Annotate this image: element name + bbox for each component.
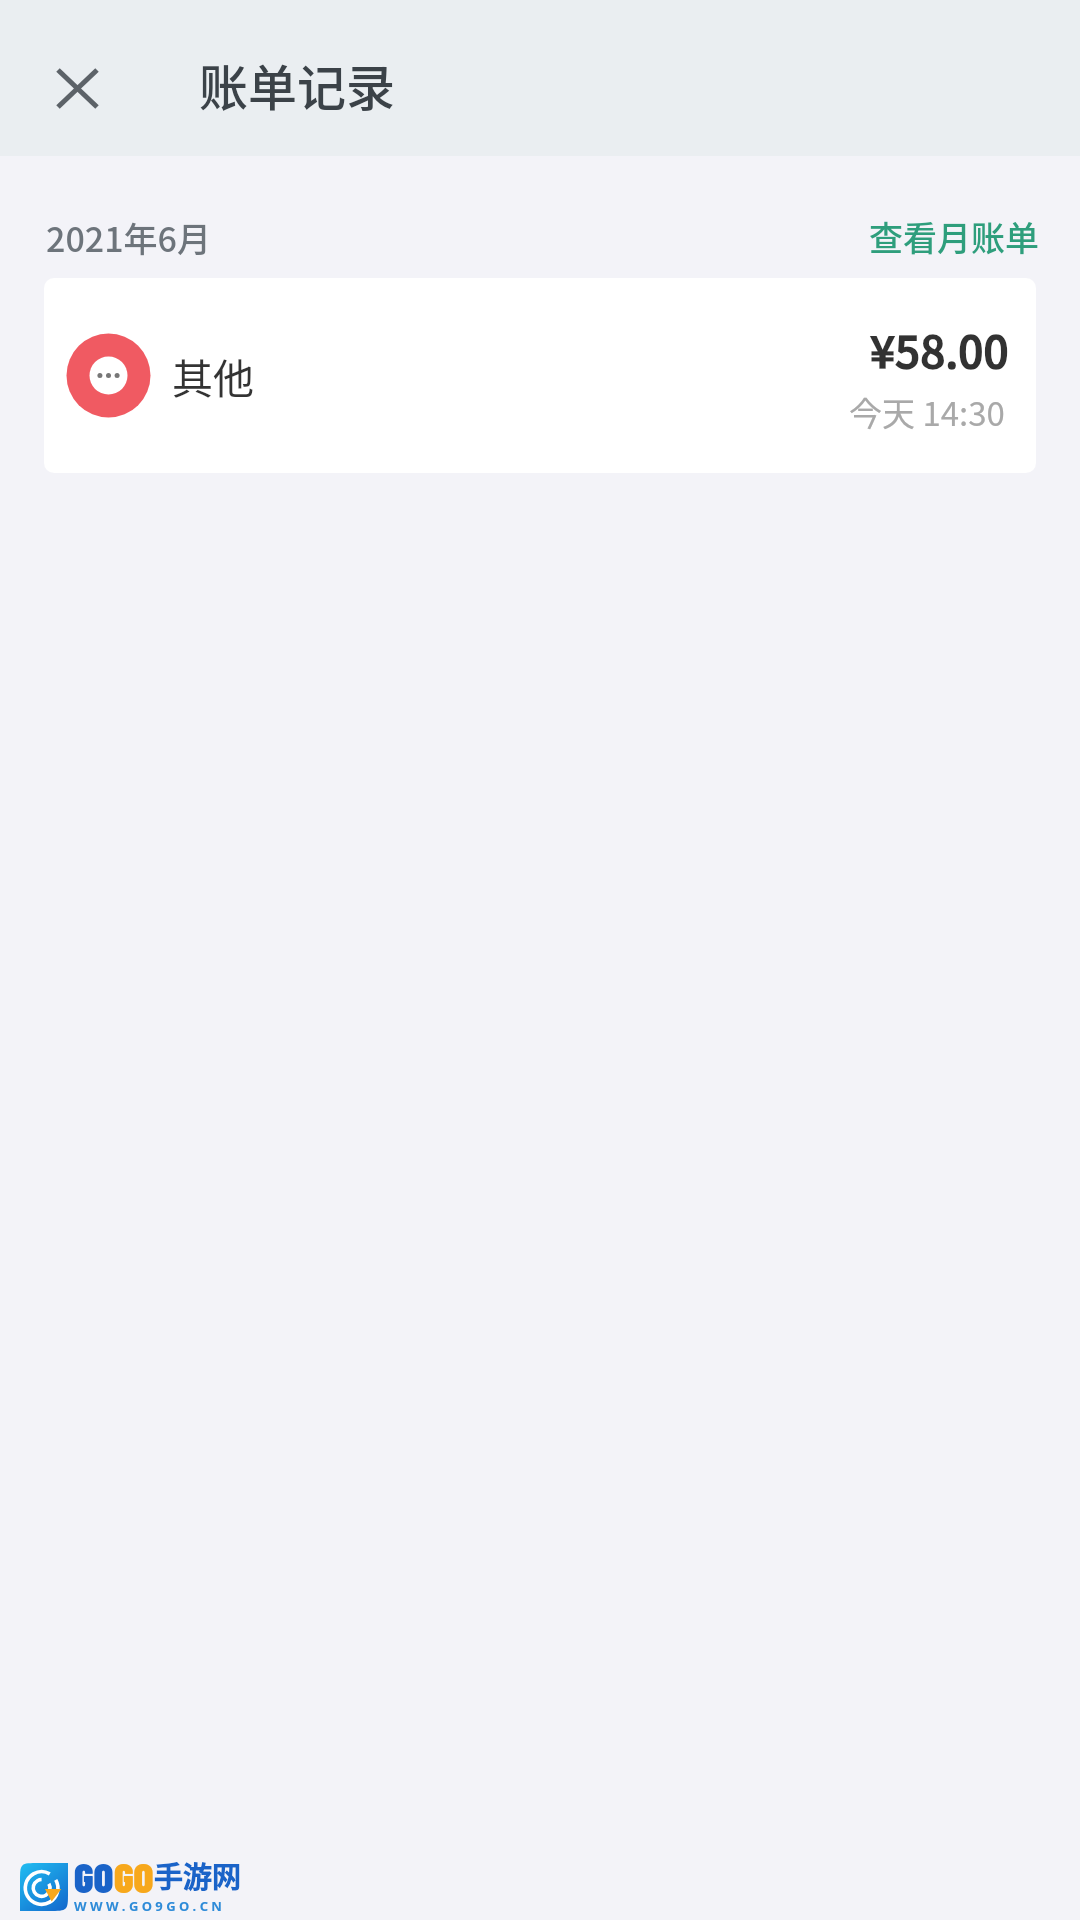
staticText: GO <box>74 1852 114 1901</box>
staticText: GO <box>114 1852 154 1901</box>
button[interactable]: Close <box>32 43 122 133</box>
staticText: 今天 14:30 <box>849 388 1005 436</box>
staticText: 2021年6月 <box>46 213 211 262</box>
staticText: 查看月账单 <box>869 212 1039 261</box>
staticText: W W W . G O 9 G O . C N <box>74 1897 222 1915</box>
staticText: 手游网 <box>154 1854 242 1896</box>
staticText: 账单记录 <box>199 49 396 120</box>
button[interactable]: 查看月账单 <box>867 208 1041 265</box>
button[interactable]: 其他 <box>44 278 1036 473</box>
staticText: 其他 <box>172 346 254 405</box>
staticText: ¥58.00 <box>870 317 1009 381</box>
